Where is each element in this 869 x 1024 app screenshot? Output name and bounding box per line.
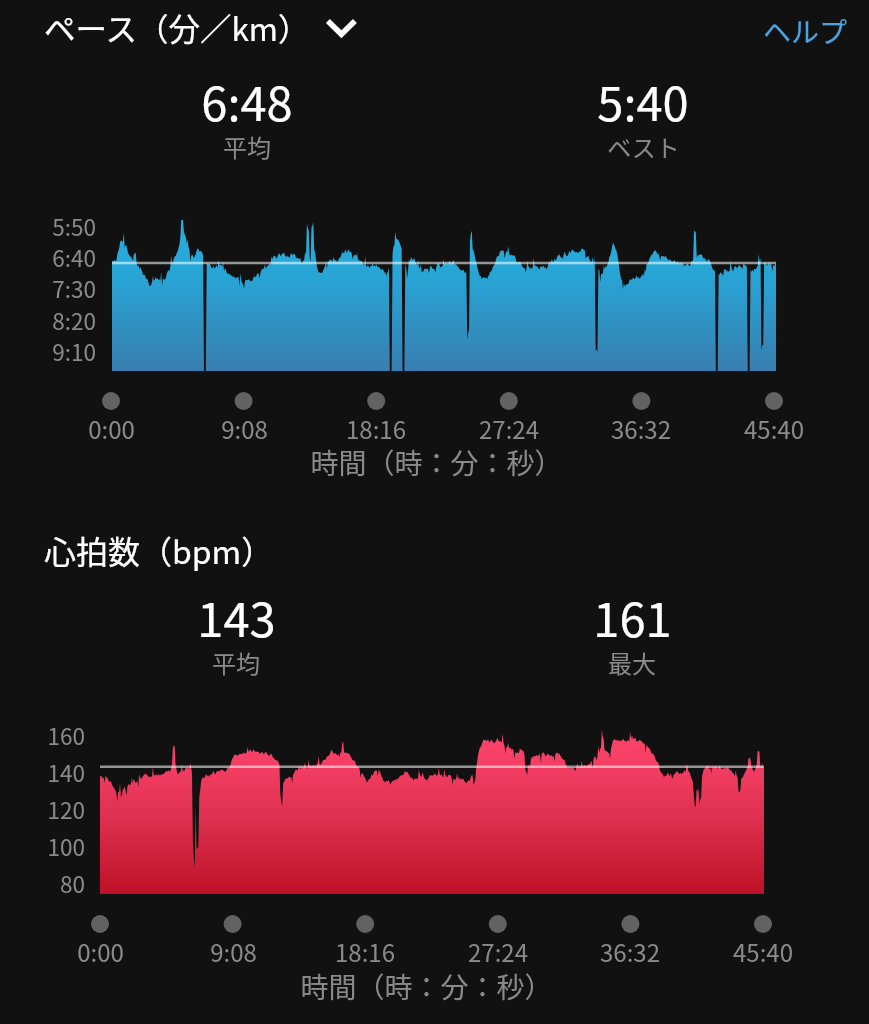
staticText: 時間（時：分：秒）: [310, 442, 563, 483]
staticText: 7:30: [52, 272, 96, 305]
staticText: 9:08: [221, 411, 268, 446]
staticText: 45:40: [733, 934, 793, 969]
staticText: 18:16: [346, 411, 406, 446]
staticText: 8:20: [52, 304, 96, 337]
staticText: 27:24: [468, 934, 528, 969]
staticText: 143: [197, 582, 276, 650]
staticText: 0:00: [88, 411, 135, 446]
staticText: 160: [47, 719, 85, 752]
staticText: 100: [47, 830, 85, 863]
staticText: ペース（分／km）: [44, 4, 310, 50]
staticText: 80: [60, 867, 85, 900]
staticText: ベスト: [607, 129, 680, 164]
staticText: 最大: [608, 645, 656, 680]
staticText: 5:40: [597, 66, 689, 134]
staticText: 心拍数（bpm）: [44, 527, 274, 573]
staticText: 時間（時：分：秒）: [300, 966, 553, 1007]
staticText: ヘルプ: [763, 11, 848, 52]
staticText: 140: [47, 756, 85, 789]
staticText: 5:50: [52, 210, 96, 243]
button[interactable]: ヘルプ: [758, 7, 853, 56]
staticText: 161: [593, 582, 672, 650]
staticText: 0:00: [77, 934, 124, 969]
staticText: 36:32: [600, 934, 660, 969]
other: Change metric: [349, 12, 379, 42]
staticText: 平均: [212, 645, 260, 680]
button[interactable]: ペース（分／km）: [38, 0, 389, 54]
staticText: 120: [47, 793, 85, 826]
staticText: 9:08: [210, 934, 257, 969]
staticText: 27:24: [479, 411, 539, 446]
staticText: 18:16: [335, 934, 395, 969]
staticText: 6:40: [52, 241, 96, 274]
staticText: 平均: [223, 129, 271, 164]
staticText: 45:40: [744, 411, 804, 446]
staticText: 9:10: [52, 335, 96, 368]
staticText: 6:48: [201, 66, 293, 134]
staticText: 36:32: [611, 411, 671, 446]
